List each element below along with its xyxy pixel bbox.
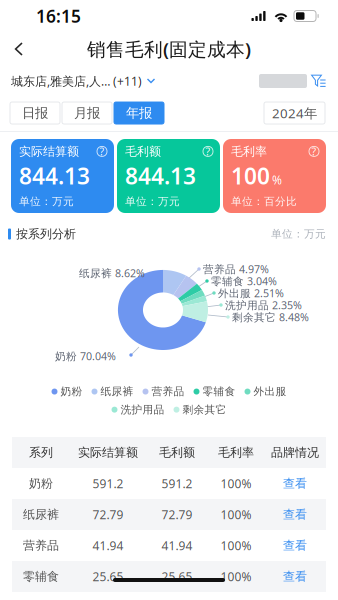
- staticText: 洗护用品: [120, 403, 164, 416]
- staticText: 毛利额: [159, 445, 195, 460]
- staticText: 零辅食: [202, 385, 235, 398]
- staticText: 591.2: [92, 475, 123, 491]
- staticText: 100%: [220, 475, 251, 491]
- staticText: 纸尿裤 8.62%: [79, 266, 145, 280]
- staticText: 城东店,雅美店,人… (+11): [11, 73, 142, 89]
- staticText: 营养品 4.97%: [203, 262, 269, 276]
- staticText: 零辅食 3.04%: [211, 274, 277, 288]
- staticText: 剩余其它 8.48%: [232, 310, 309, 324]
- staticText: 单位：百分比: [231, 195, 297, 208]
- staticText: 年报: [126, 105, 152, 121]
- staticText: 25.65: [92, 568, 123, 584]
- staticText: 纸尿裤: [23, 507, 59, 522]
- staticText: 2024年: [272, 104, 317, 122]
- staticText: 零辅食: [23, 569, 59, 584]
- staticText: ?: [205, 144, 210, 158]
- staticText: 844.13: [19, 161, 90, 191]
- staticText: %: [272, 172, 282, 188]
- staticText: 41.94: [161, 537, 192, 553]
- staticText: 外出服 2.51%: [218, 286, 284, 300]
- staticText: 查看: [283, 476, 307, 491]
- staticText: 毛利额: [125, 144, 161, 159]
- button[interactable]: 查看: [264, 530, 326, 561]
- staticText: 奶粉: [60, 385, 82, 398]
- staticText: 41.94: [92, 537, 123, 553]
- staticText: 实际结算额: [78, 445, 138, 460]
- staticText: 单位：万元: [125, 195, 180, 208]
- staticText: 查看: [283, 507, 307, 522]
- button[interactable]: 城东店,雅美店,人… (+11): [0, 68, 155, 94]
- staticText: 844.13: [125, 161, 196, 191]
- button[interactable]: 查看: [264, 468, 326, 499]
- staticText: ?: [99, 144, 104, 158]
- staticText: 单位：万元: [19, 195, 74, 208]
- staticText: 奶粉 70.04%: [55, 349, 116, 363]
- staticText: ?: [311, 144, 316, 158]
- button[interactable]: 2024年: [264, 102, 325, 124]
- staticText: 洗护用品 2.35%: [225, 298, 302, 312]
- staticText: 系列: [29, 445, 53, 460]
- staticText: 销售毛利(固定成本): [87, 37, 251, 61]
- staticText: 营养品: [23, 538, 59, 553]
- staticText: 单位：万元: [271, 227, 326, 240]
- staticText: 查看: [283, 569, 307, 584]
- staticText: 按系列分析: [16, 227, 76, 241]
- staticText: 外出服: [253, 385, 286, 398]
- staticText: 纸尿裤: [100, 385, 133, 398]
- staticText: 100: [231, 161, 270, 191]
- button[interactable]: 日报: [10, 102, 60, 124]
- staticText: 日报: [22, 105, 48, 121]
- staticText: 剩余其它: [182, 403, 226, 416]
- staticText: 25.65: [161, 568, 192, 584]
- button[interactable]: 查看: [264, 499, 326, 530]
- staticText: 100%: [220, 537, 251, 553]
- staticText: 月报: [74, 105, 100, 121]
- staticText: 100%: [220, 506, 251, 522]
- button[interactable]: Filter: [307, 69, 338, 93]
- button[interactable]: 月报: [62, 102, 112, 124]
- staticText: 毛利率: [218, 445, 254, 460]
- staticText: 591.2: [161, 475, 192, 491]
- staticText: 营养品: [151, 385, 184, 398]
- button[interactable]: 年报: [114, 102, 164, 124]
- staticText: 72.79: [161, 506, 192, 522]
- staticText: 72.79: [92, 506, 123, 522]
- staticText: 查看: [283, 538, 307, 553]
- staticText: 毛利率: [231, 144, 267, 159]
- button[interactable]: 查看: [264, 561, 326, 592]
- staticText: 100%: [220, 568, 251, 584]
- staticText: 品牌情况: [271, 445, 319, 460]
- staticText: 实际结算额: [19, 144, 79, 159]
- staticText: 16:15: [36, 4, 81, 27]
- staticText: 奶粉: [29, 476, 53, 491]
- button[interactable]: Back: [0, 33, 34, 65]
